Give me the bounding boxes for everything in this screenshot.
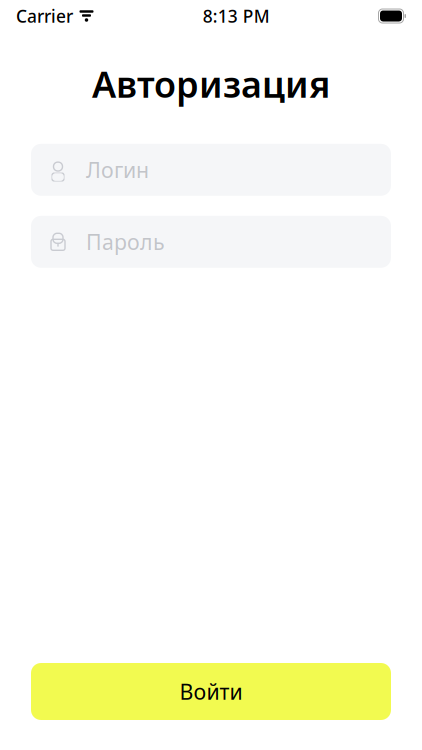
button[interactable]: Пароль (31, 216, 391, 268)
staticText: Пароль (86, 228, 165, 256)
staticText: Логин (86, 156, 149, 184)
button[interactable]: Логин (31, 144, 391, 196)
staticText: Авторизация (92, 60, 330, 108)
button[interactable]: Войти (31, 663, 391, 720)
staticText: Войти (179, 677, 242, 706)
staticText: Carrier (16, 4, 73, 27)
staticText: 8:13 PM (203, 4, 270, 27)
